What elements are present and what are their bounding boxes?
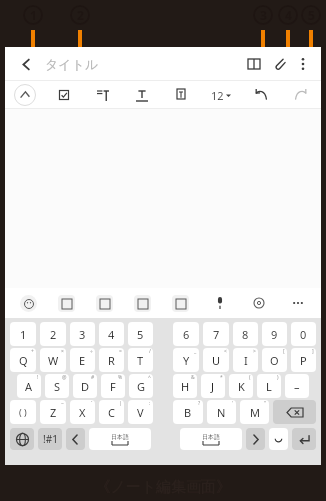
button[interactable]: Next (246, 428, 265, 450)
button[interactable]: I (233, 348, 258, 372)
button[interactable]: Attach (267, 51, 293, 77)
button[interactable]: Change language (10, 428, 34, 450)
button[interactable]: Space (89, 428, 151, 450)
staticText: + (31, 348, 34, 355)
button[interactable]: F (101, 374, 125, 398)
staticText: ! (37, 374, 39, 381)
button[interactable]: 0 (291, 322, 316, 346)
button[interactable]: T (128, 348, 153, 372)
button[interactable]: GIF (85, 288, 123, 318)
staticText: C (108, 405, 115, 420)
button[interactable]: K (229, 374, 253, 398)
staticText: F (110, 379, 116, 394)
staticText: ( ) (19, 406, 27, 418)
button[interactable]: More (278, 288, 317, 318)
staticText: H (181, 379, 190, 394)
button[interactable]: C (99, 400, 124, 424)
button[interactable]: More options (293, 54, 313, 74)
button[interactable]: Book (241, 51, 267, 77)
button[interactable]: 3 (70, 322, 95, 346)
button[interactable] (273, 400, 316, 424)
staticText: " (264, 400, 267, 407)
button[interactable]: V (128, 400, 153, 424)
button[interactable]: Clipboard (123, 288, 161, 318)
staticText: X (79, 405, 86, 420)
button[interactable]: G (129, 374, 153, 398)
button[interactable]: Symbol (269, 428, 288, 450)
button[interactable]: P (291, 348, 316, 372)
button[interactable]: 1 (10, 322, 36, 346)
staticText: _ (194, 348, 197, 355)
button[interactable]: 6 (173, 322, 199, 346)
button[interactable]: B (173, 400, 203, 424)
button[interactable]: 8 (233, 322, 258, 346)
button[interactable]: R (99, 348, 124, 372)
button[interactable]: J (201, 374, 225, 398)
button[interactable]: O (262, 348, 287, 372)
staticText: # (91, 374, 95, 381)
button[interactable]: 7 (203, 322, 229, 346)
button[interactable]: Translate (161, 288, 200, 318)
staticText: ^ (148, 374, 151, 381)
staticText: 4 (108, 327, 115, 342)
button[interactable]: H (173, 374, 197, 398)
staticText: Y (183, 353, 190, 368)
button[interactable]: Sticker (47, 288, 85, 318)
button[interactable]: U (203, 348, 229, 372)
button[interactable]: Text format (122, 81, 161, 109)
staticText: D (81, 379, 90, 394)
button[interactable]: L (257, 374, 281, 398)
button[interactable]: Text box (161, 81, 201, 109)
staticText: I (244, 353, 248, 368)
button[interactable]: Space (180, 428, 242, 450)
button[interactable]: Y (173, 348, 199, 372)
staticText: ( (249, 374, 251, 381)
staticText: T (137, 353, 144, 368)
button[interactable]: M (240, 400, 269, 424)
button[interactable]: E (70, 348, 95, 372)
button[interactable]: 5 (128, 322, 153, 346)
staticText: 2 (50, 327, 57, 342)
staticText: % (118, 374, 123, 381)
button[interactable]: Emoji (9, 288, 47, 318)
staticText: 1 (20, 327, 27, 342)
button[interactable]: S (45, 374, 69, 398)
button[interactable]: 9 (262, 322, 287, 346)
button[interactable]: Pen (5, 81, 44, 109)
staticText: V (137, 405, 144, 420)
button[interactable]: Z (40, 400, 66, 424)
button[interactable]: Settings (239, 288, 278, 318)
button[interactable]: Previous (66, 428, 85, 450)
button[interactable]: – (285, 374, 309, 398)
button[interactable]: X (70, 400, 95, 424)
button[interactable]: Paragraph style (83, 81, 122, 109)
button[interactable]: Q (10, 348, 36, 372)
button[interactable]: 4 (99, 322, 124, 346)
staticText: 6 (183, 327, 190, 342)
staticText: ] (312, 348, 314, 355)
staticText: U (212, 353, 221, 368)
button[interactable]: N (207, 400, 236, 424)
button[interactable]: Voice input (200, 288, 239, 318)
button[interactable]: ( ) (10, 400, 36, 424)
button[interactable]: !#1 (38, 428, 62, 450)
staticText: L (266, 379, 272, 394)
button[interactable]: Undo (241, 81, 281, 109)
staticText: & (191, 374, 195, 381)
button[interactable]: Checklist (44, 81, 83, 109)
staticText: Z (50, 405, 57, 420)
staticText: ÷ (90, 348, 93, 355)
button[interactable]: D (73, 374, 97, 398)
button[interactable]: A (17, 374, 41, 398)
staticText: O (270, 353, 279, 368)
button[interactable]: Redo (281, 81, 321, 109)
button[interactable]: タイトル (45, 56, 241, 72)
button[interactable]: Back (13, 51, 39, 77)
button[interactable]: 2 (40, 322, 66, 346)
button[interactable]: 12 (201, 81, 241, 109)
button[interactable]: Enter (292, 428, 316, 450)
button[interactable]: W (40, 348, 66, 372)
